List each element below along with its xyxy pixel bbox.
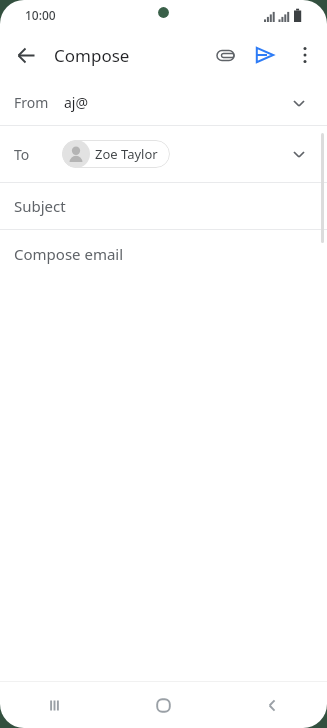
button[interactable]: Back [218,682,327,728]
button[interactable]: Subject [0,183,327,229]
button[interactable]: More options [285,35,325,75]
staticText: Zoe Taylor [95,145,158,163]
button[interactable]: From [0,80,327,125]
button[interactable]: Send [245,35,285,75]
button[interactable]: Attach file [205,35,245,75]
staticText: Compose [54,44,130,67]
button[interactable]: Expand [281,136,317,172]
staticText: Subject [14,196,66,216]
staticText: To [14,145,30,164]
button[interactable]: Back [6,35,46,75]
button[interactable]: Expand [281,85,317,121]
button[interactable]: Home [109,682,218,728]
button[interactable]: To [0,126,327,182]
button[interactable]: Recents [0,682,109,728]
staticText: Compose email [14,244,124,264]
staticText: 10:00 [25,7,56,23]
button[interactable]: Zoe Taylor [62,140,170,168]
staticText: From [14,93,49,112]
button[interactable]: Compose email [0,230,327,278]
staticText: aj@ [64,93,89,112]
